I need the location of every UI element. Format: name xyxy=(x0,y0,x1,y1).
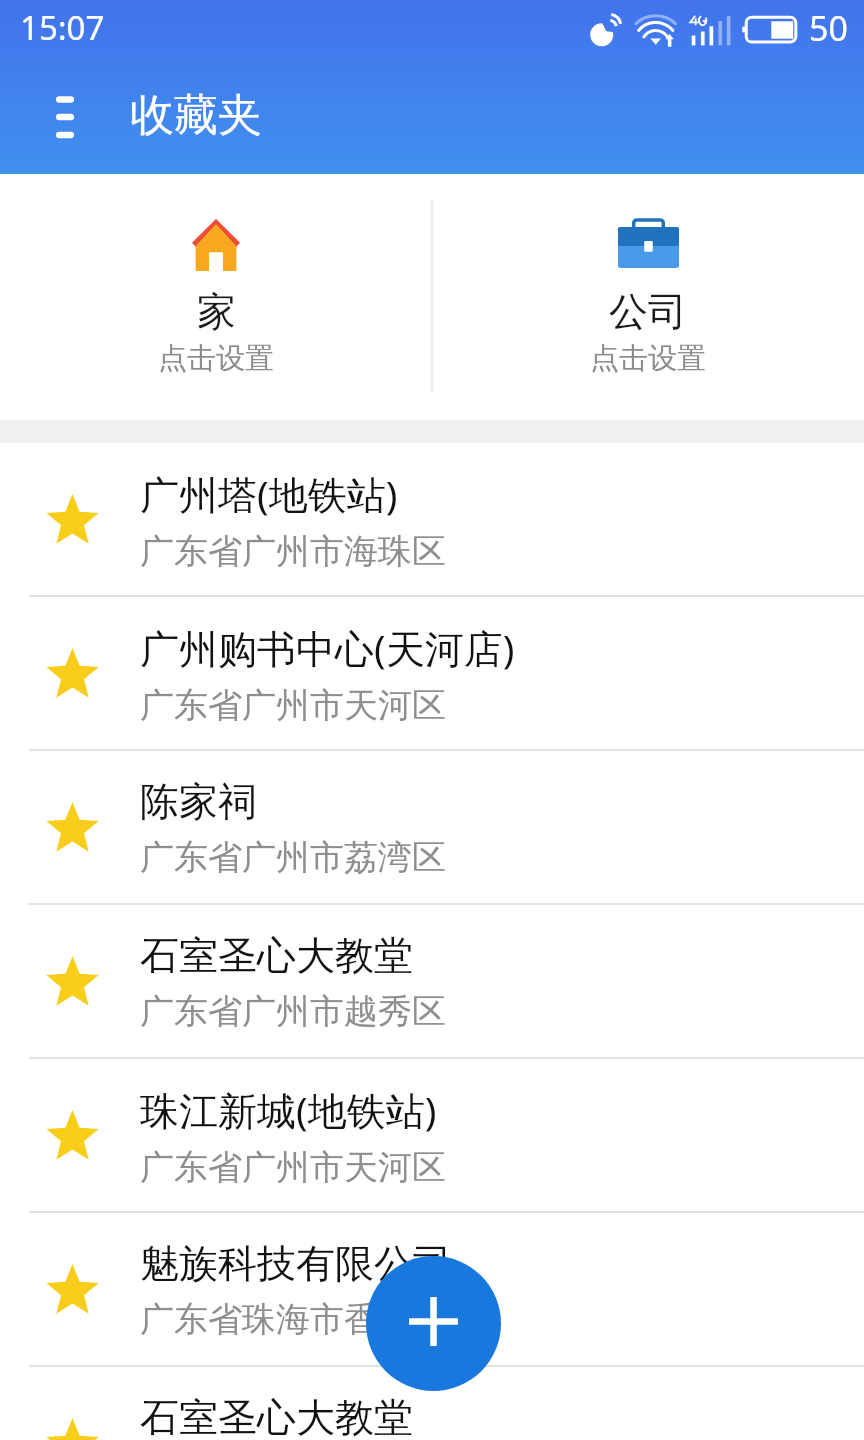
button[interactable]: 广州购书中心(天河店) xyxy=(0,597,864,749)
staticText: 石室圣心大教堂 xyxy=(140,1393,413,1440)
staticText: 广东省广州市天河区 xyxy=(140,684,446,727)
staticText: 点击设置 xyxy=(590,340,706,377)
staticText: 50 xyxy=(809,5,848,51)
staticText: 收藏夹 xyxy=(130,88,262,143)
button[interactable]: 珠江新城(地铁站) xyxy=(0,1059,864,1211)
button[interactable]: 石室圣心大教堂 xyxy=(0,1367,864,1440)
button[interactable]: 家 xyxy=(0,174,432,420)
button[interactable]: 陈家祠 xyxy=(0,751,864,903)
button[interactable]: Add favourite xyxy=(366,1256,501,1391)
staticText: 石室圣心大教堂 xyxy=(140,931,413,980)
staticText: 广东省广州市天河区 xyxy=(140,1146,446,1189)
staticText: 15:07 xyxy=(20,5,105,50)
staticText: 公司 xyxy=(609,287,687,336)
staticText: 广东省广州市海珠区 xyxy=(140,530,446,573)
staticText: 家 xyxy=(197,287,236,336)
staticText: 广东省广州市荔湾区 xyxy=(140,836,446,879)
button[interactable]: 石室圣心大教堂 xyxy=(0,905,864,1057)
staticText: 广东省珠海市香洲区 xyxy=(140,1298,446,1341)
button[interactable]: 广州塔(地铁站) xyxy=(0,443,864,595)
button[interactable]: 公司 xyxy=(432,174,864,420)
staticText: 珠江新城(地铁站) xyxy=(140,1083,437,1136)
button[interactable]: 魅族科技有限公司 xyxy=(0,1213,864,1365)
staticText: 魅族科技有限公司 xyxy=(140,1239,452,1288)
button[interactable]: Menu xyxy=(28,70,102,144)
staticText: 广东省广州市越秀区 xyxy=(140,990,446,1033)
staticText: 广州塔(地铁站) xyxy=(140,467,398,520)
staticText: 广州购书中心(天河店) xyxy=(140,621,515,674)
staticText: 点击设置 xyxy=(158,340,274,377)
staticText: 陈家祠 xyxy=(140,777,257,826)
